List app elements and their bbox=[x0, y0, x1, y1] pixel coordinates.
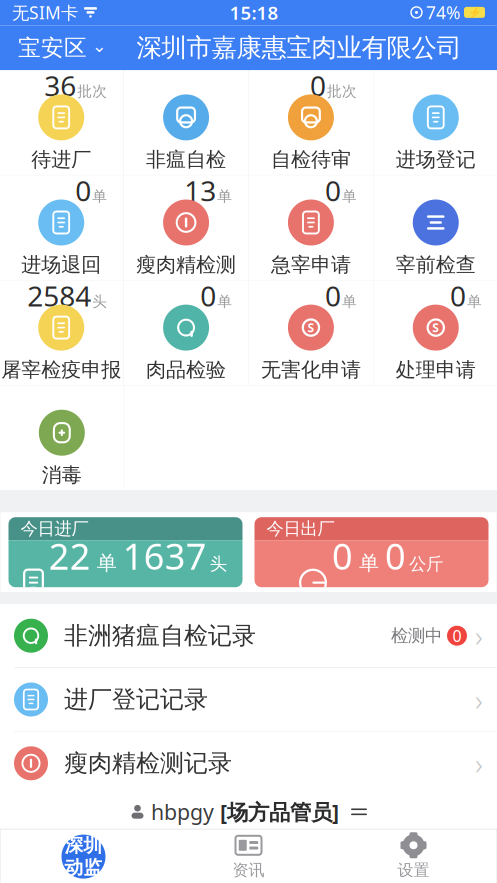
staticText: 瘦肉精检测 bbox=[136, 252, 236, 277]
button[interactable]: 36 bbox=[0, 70, 123, 175]
staticText: 头 bbox=[210, 553, 227, 574]
staticText: 0 bbox=[325, 172, 341, 209]
staticText: 进场登记 bbox=[396, 147, 476, 172]
staticText: 非洲猪瘟自检记录 bbox=[64, 621, 256, 650]
button[interactable]: 0 bbox=[249, 281, 373, 385]
staticText: 无害化申请 bbox=[261, 358, 361, 382]
staticText: › bbox=[475, 616, 483, 655]
staticText: 0 bbox=[450, 277, 466, 314]
staticText: 单 bbox=[353, 551, 385, 575]
button[interactable]: 非瘟自检 bbox=[124, 70, 248, 175]
button[interactable]: hbpgy bbox=[0, 795, 497, 829]
staticText: 22 bbox=[49, 532, 91, 580]
staticText: 肉品检验 bbox=[146, 358, 226, 382]
staticText: 宝安区 bbox=[18, 34, 87, 62]
staticText: 1637 bbox=[123, 532, 207, 580]
button[interactable]: 今日出厂 bbox=[254, 517, 488, 587]
staticText: 0 bbox=[325, 277, 341, 314]
button[interactable]: 今日进厂 bbox=[8, 517, 242, 587]
button[interactable]: 瘦肉精检测记录 bbox=[0, 732, 497, 795]
staticText: 74% bbox=[426, 1, 460, 24]
staticText: 深圳 bbox=[64, 834, 102, 857]
staticText: hbpgy bbox=[145, 798, 220, 826]
staticText: 36 bbox=[44, 67, 76, 104]
staticText: 单 bbox=[342, 293, 357, 311]
staticText: 宰前检查 bbox=[396, 252, 476, 277]
staticText: 瘦肉精检测记录 bbox=[64, 749, 232, 778]
staticText: 0 bbox=[385, 532, 406, 580]
staticText: ⌄ bbox=[92, 36, 107, 56]
button[interactable]: 进厂登记记录 bbox=[0, 668, 497, 731]
staticText: 2584 bbox=[27, 277, 91, 314]
staticText: 0 bbox=[75, 172, 91, 209]
staticText: 消毒 bbox=[42, 463, 82, 487]
button[interactable]: 设置 bbox=[331, 830, 496, 883]
button[interactable]: 0 bbox=[249, 70, 373, 175]
staticText: 今日出厂 bbox=[266, 518, 334, 539]
button[interactable]: 0 bbox=[124, 281, 248, 385]
staticText: 处理申请 bbox=[396, 358, 476, 382]
staticText: 进场退回 bbox=[21, 252, 101, 277]
button[interactable]: 宝安区 bbox=[14, 28, 111, 68]
button[interactable]: 进场登记 bbox=[374, 70, 497, 175]
staticText: › bbox=[475, 680, 483, 719]
staticText: 今日进厂 bbox=[20, 518, 88, 539]
staticText: 待进厂 bbox=[31, 147, 91, 172]
button[interactable]: 0 bbox=[249, 175, 373, 280]
staticText: S bbox=[432, 320, 439, 335]
button[interactable]: 深圳动监 首页 bbox=[1, 830, 166, 883]
button[interactable]: 宰前检查 bbox=[374, 175, 497, 280]
staticText: 单 bbox=[217, 293, 232, 311]
staticText: 自检待审 bbox=[271, 147, 351, 172]
staticText: 动监 bbox=[64, 856, 102, 879]
staticText: › bbox=[475, 744, 483, 783]
staticText: 急宰申请 bbox=[271, 252, 351, 277]
staticText: 单 bbox=[91, 551, 123, 575]
staticText: 单 bbox=[217, 187, 232, 205]
staticText: 0 bbox=[332, 532, 353, 580]
button[interactable]: 2584 bbox=[0, 281, 123, 385]
staticText: 公斤 bbox=[409, 553, 443, 575]
button[interactable]: 非洲猪瘟自检记录 bbox=[0, 604, 497, 667]
staticText: 0 bbox=[452, 625, 461, 646]
staticText: 批次 bbox=[77, 82, 107, 100]
button[interactable]: 0 bbox=[0, 175, 123, 280]
staticText: 检测中 bbox=[391, 625, 442, 646]
staticText: 设置 bbox=[397, 860, 429, 880]
staticText: S bbox=[307, 320, 314, 335]
button[interactable]: 13 bbox=[124, 175, 248, 280]
staticText: 进厂登记记录 bbox=[64, 685, 208, 714]
staticText: [场方品管员] bbox=[220, 798, 339, 826]
staticText: 单 bbox=[342, 187, 357, 205]
staticText: 单 bbox=[92, 187, 107, 205]
button[interactable]: 资讯 bbox=[166, 830, 331, 883]
staticText: 单 bbox=[467, 293, 482, 311]
button[interactable]: 0 bbox=[374, 281, 497, 385]
staticText: 0 bbox=[310, 67, 326, 104]
staticText: 深圳市嘉康惠宝肉业有限公司 bbox=[136, 32, 461, 63]
staticText: 头 bbox=[92, 293, 107, 311]
staticText: 批次 bbox=[327, 82, 357, 100]
staticText: 15:18 bbox=[229, 0, 278, 25]
staticText: 无SIM卡 bbox=[12, 1, 78, 24]
staticText: 0 bbox=[200, 277, 216, 314]
staticText: 13 bbox=[184, 172, 216, 209]
button[interactable]: 消毒 bbox=[0, 386, 124, 490]
staticText: ⚡ bbox=[468, 6, 481, 18]
staticText: 屠宰检疫申报 bbox=[1, 358, 121, 382]
staticText: 资讯 bbox=[232, 860, 264, 880]
staticText: 非瘟自检 bbox=[146, 147, 226, 172]
